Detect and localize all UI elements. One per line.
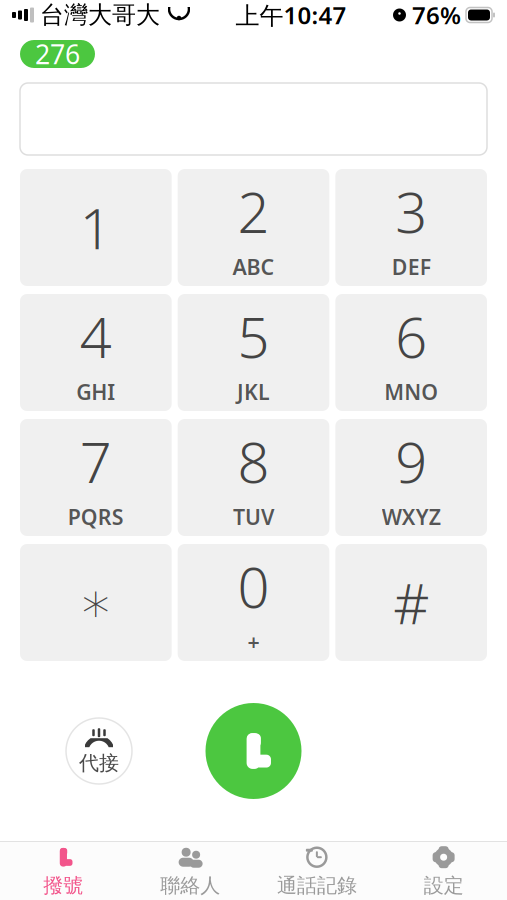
staticText: 撥號 bbox=[43, 873, 83, 898]
staticText: 76% bbox=[412, 0, 461, 31]
staticText: MNO bbox=[384, 377, 438, 406]
staticText: 5 bbox=[237, 299, 269, 374]
staticText: 6 bbox=[395, 299, 427, 374]
staticText: 9 bbox=[395, 424, 427, 499]
staticText: ∗ bbox=[78, 571, 113, 634]
button[interactable]: 8 bbox=[178, 419, 329, 536]
staticText: 代接 bbox=[79, 751, 119, 775]
button[interactable]: ∗ bbox=[20, 544, 172, 661]
button[interactable]: 撥號 bbox=[0, 842, 127, 900]
staticText: GHI bbox=[76, 377, 115, 406]
staticText: 0 bbox=[237, 549, 269, 624]
button[interactable]: # bbox=[335, 544, 487, 661]
staticText: DEF bbox=[392, 252, 431, 281]
button[interactable]: 5 bbox=[178, 294, 329, 411]
button[interactable]: 7 bbox=[20, 419, 172, 536]
staticText: 通話記錄 bbox=[277, 873, 357, 898]
button[interactable]: 聯絡人 bbox=[127, 842, 254, 900]
staticText: 7 bbox=[80, 424, 112, 499]
button[interactable]: 代接 bbox=[66, 718, 132, 784]
button[interactable]: 4 bbox=[20, 294, 172, 411]
staticText: 2 bbox=[237, 174, 269, 249]
staticText: 設定 bbox=[424, 873, 464, 898]
staticText: PQRS bbox=[68, 502, 124, 531]
button[interactable]: 設定 bbox=[380, 842, 507, 900]
staticText: JKL bbox=[237, 377, 270, 406]
button[interactable]: 9 bbox=[335, 419, 487, 536]
button[interactable]: Call bbox=[205, 703, 301, 799]
staticText: 8 bbox=[237, 424, 269, 499]
staticText: 上午10:47 bbox=[235, 0, 346, 31]
staticText: 3 bbox=[395, 174, 427, 249]
button[interactable]: 通話記錄 bbox=[253, 842, 380, 900]
staticText: 4 bbox=[80, 299, 112, 374]
staticText: TUV bbox=[233, 502, 274, 531]
button[interactable]: 6 bbox=[335, 294, 487, 411]
staticText: WXYZ bbox=[382, 502, 441, 531]
staticText: + bbox=[247, 627, 259, 656]
button[interactable]: 3 bbox=[335, 169, 487, 286]
staticText: 276 bbox=[35, 36, 80, 72]
button[interactable]: 2 bbox=[178, 169, 329, 286]
button[interactable]: 0 bbox=[178, 544, 329, 661]
staticText: 台灣大哥大 bbox=[40, 0, 160, 30]
staticText: # bbox=[393, 565, 429, 640]
staticText: ABC bbox=[232, 252, 274, 281]
staticText: 聯絡人 bbox=[160, 873, 220, 898]
button[interactable]: 1 bbox=[20, 169, 172, 286]
staticText: 1 bbox=[80, 190, 112, 265]
